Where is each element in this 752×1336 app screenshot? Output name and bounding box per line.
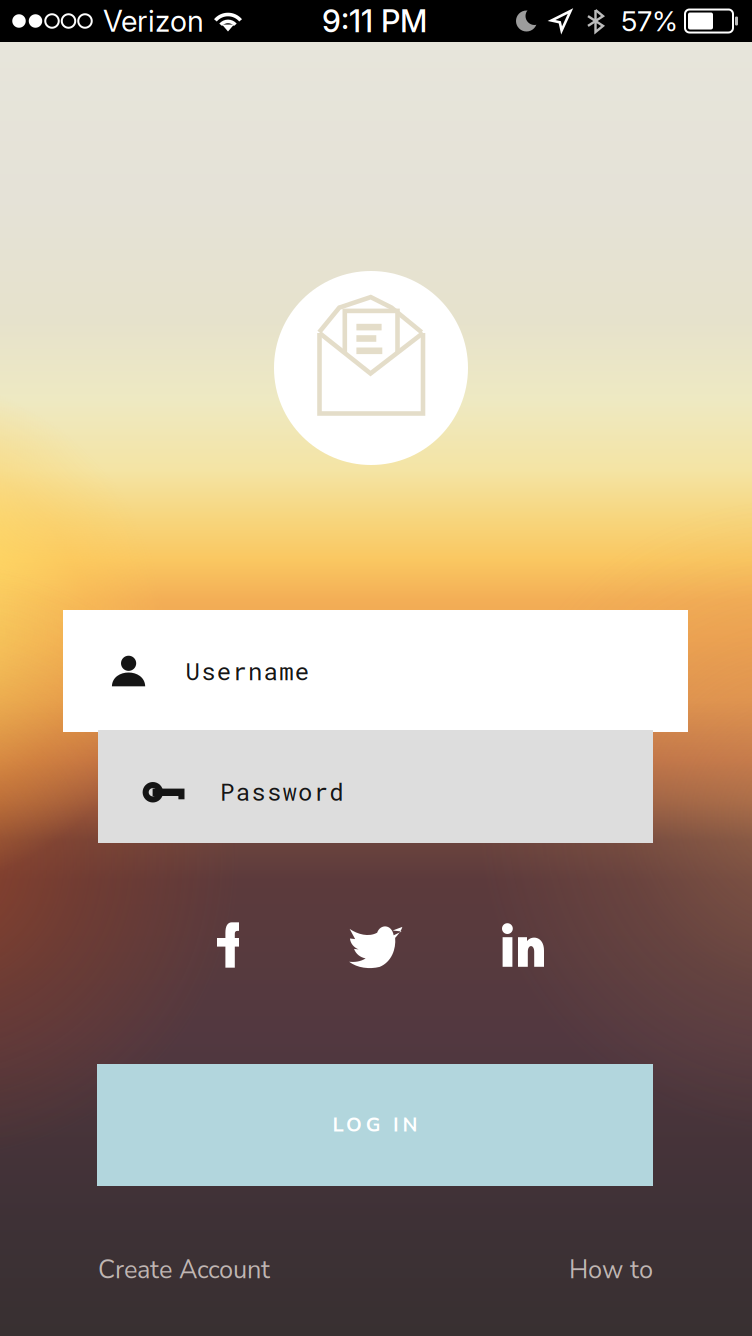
staticText: LOG IN bbox=[332, 1111, 417, 1139]
staticText: Username bbox=[186, 655, 309, 687]
button[interactable]: LOG IN bbox=[97, 1064, 653, 1186]
staticText: Verizon bbox=[103, 3, 204, 39]
staticText: How to bbox=[569, 1253, 653, 1287]
button[interactable]: Username bbox=[63, 610, 688, 732]
button[interactable]: Sign in with LinkedIn bbox=[482, 900, 564, 990]
button[interactable]: How to bbox=[569, 1250, 653, 1290]
button[interactable]: Password bbox=[98, 730, 653, 843]
staticText: Password bbox=[220, 776, 343, 807]
staticText: Create Account bbox=[98, 1253, 270, 1287]
staticText: 9:11 PM bbox=[322, 2, 427, 39]
button[interactable]: Sign in with Twitter bbox=[334, 900, 416, 990]
staticText: 57% bbox=[621, 4, 678, 38]
button[interactable]: Sign in with Facebook bbox=[187, 900, 269, 990]
button[interactable]: Create Account bbox=[98, 1250, 270, 1290]
